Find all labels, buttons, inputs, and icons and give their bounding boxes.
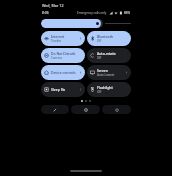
- staticText: Off: [97, 39, 102, 43]
- button[interactable]: Auto-rotate: [87, 48, 131, 63]
- button[interactable]: Settings: [71, 105, 100, 114]
- button[interactable]: Internet: [41, 31, 85, 46]
- staticText: Off: [97, 56, 102, 60]
- staticText: Internet: [51, 34, 65, 39]
- button[interactable]: Screen: [87, 65, 131, 80]
- button[interactable]: Do Not Disturb: [41, 48, 85, 63]
- button[interactable]: Bluetooth: [87, 31, 131, 46]
- staticText: Bluetooth: [97, 34, 114, 39]
- button[interactable]: Brightness: [41, 19, 131, 28]
- staticText: Device controls: [51, 70, 76, 75]
- staticText: Emergency calls only: [77, 11, 107, 15]
- staticText: Camera: [51, 56, 62, 60]
- button[interactable]: Flashlight: [87, 82, 131, 97]
- button[interactable]: Device controls: [41, 65, 85, 80]
- staticText: Auto Lowest: [97, 73, 115, 77]
- staticText: Do Not Disturb: [51, 51, 76, 56]
- staticText: Flashlight: [97, 85, 113, 90]
- staticText: Auto-rotate: [97, 51, 116, 56]
- staticText: 8:06: [42, 10, 49, 15]
- staticText: Wed, Mar 12: [42, 3, 64, 8]
- staticText: Screen: [97, 68, 108, 73]
- button[interactable]: Power: [102, 105, 131, 114]
- button[interactable]: Edit: [41, 105, 69, 114]
- staticText: Tundra: [51, 39, 61, 43]
- staticText: Off: [97, 90, 102, 94]
- staticText: Sleep Fix: [51, 87, 66, 92]
- staticText: 86%: [124, 11, 130, 15]
- button[interactable]: Sleep Fix: [41, 82, 85, 97]
